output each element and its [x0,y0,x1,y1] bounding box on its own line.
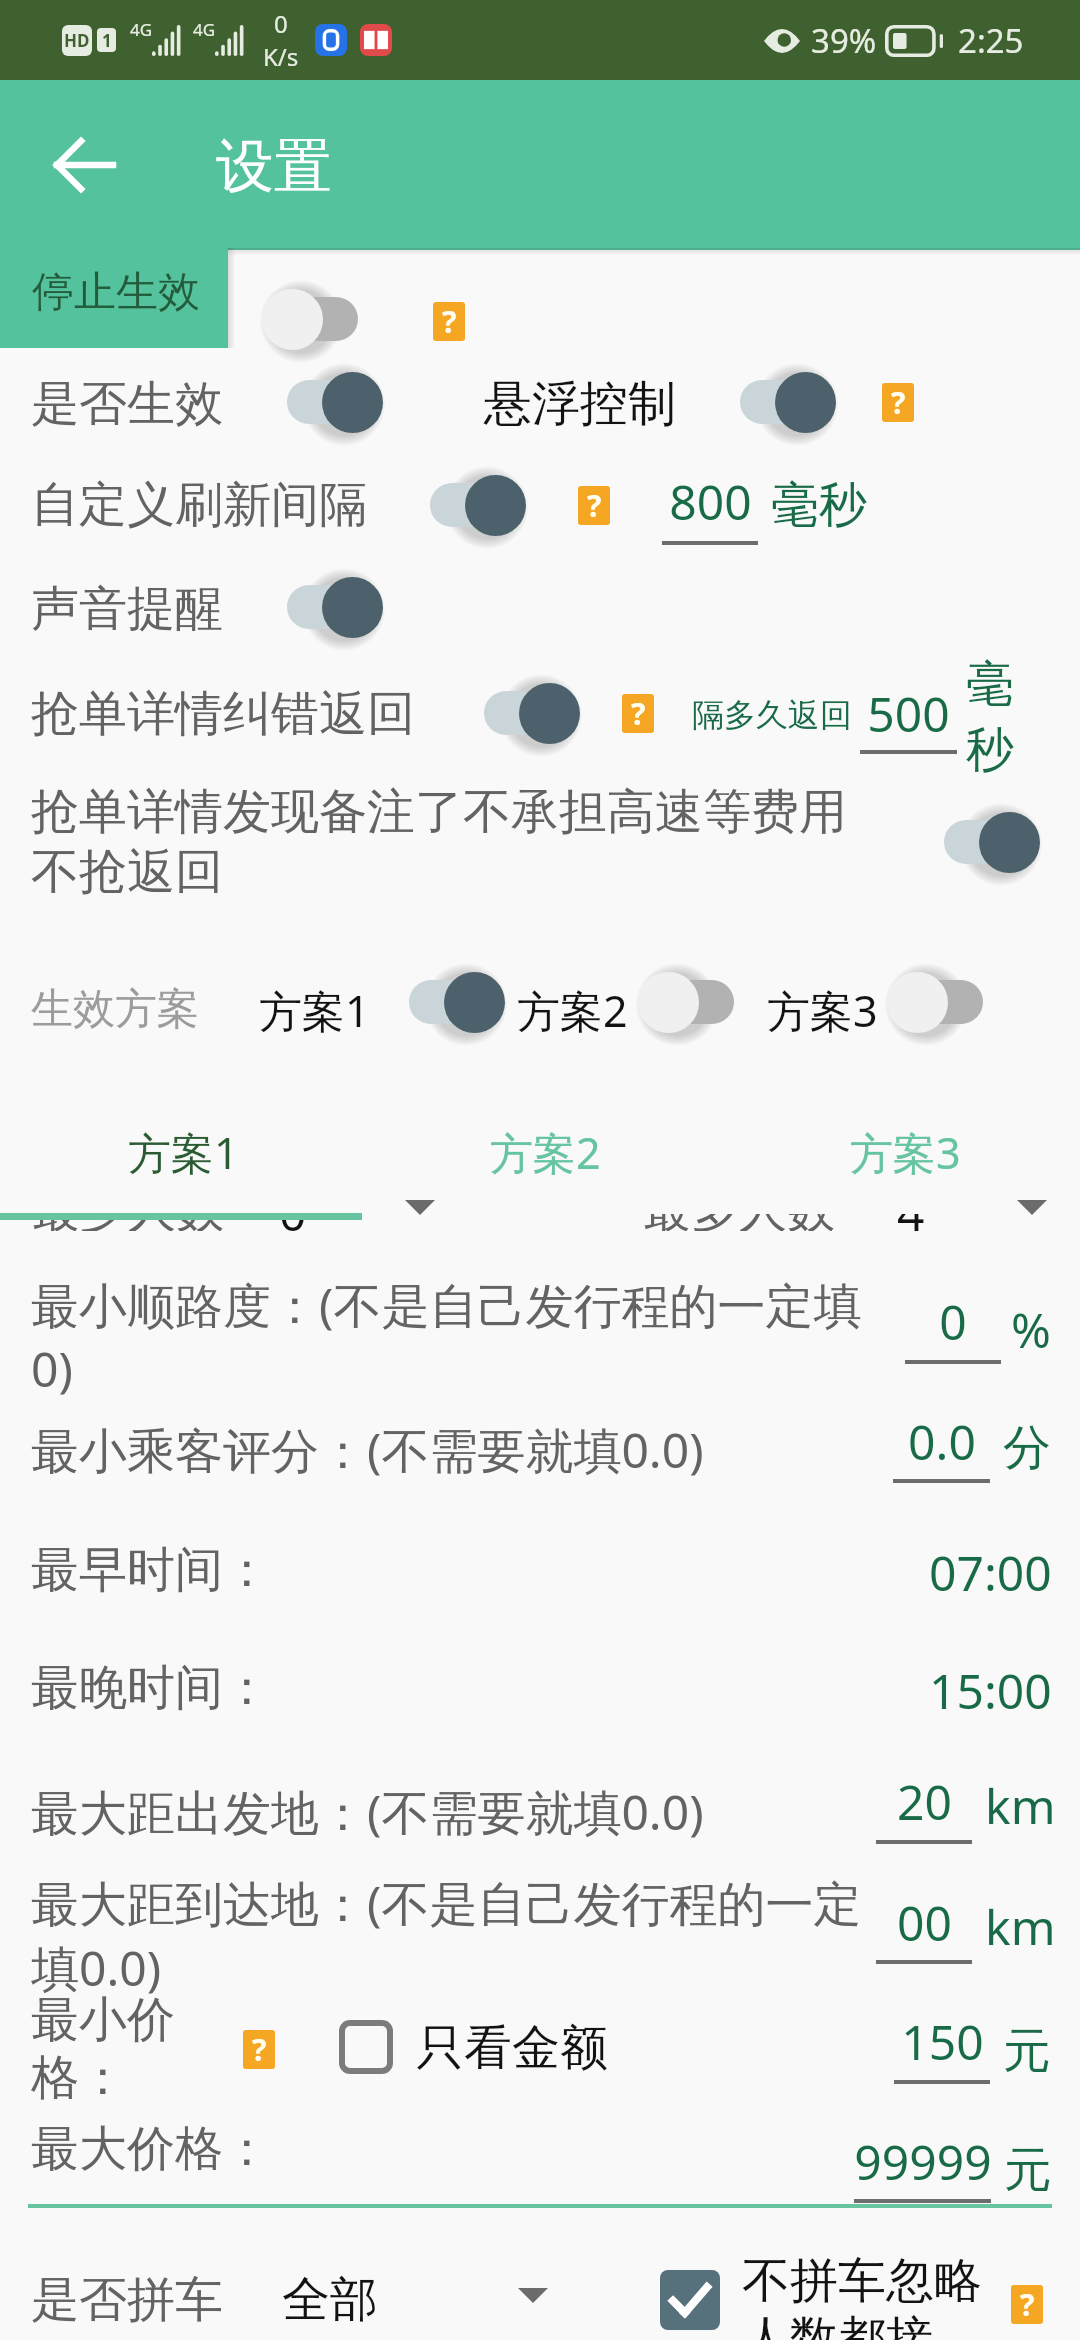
staticText: 99999 [854,2129,991,2194]
staticText: 只看金额 [416,2018,608,2078]
staticText: 毫秒 [771,475,867,535]
button[interactable]: Enabled [430,468,526,542]
staticText: 方案2 [490,1123,601,1182]
staticText: 最早时间： [31,1540,271,1600]
staticText: 抢单详情纠错返回 [31,684,415,744]
button[interactable]: Disabled [262,282,358,356]
staticText: 1 [102,29,112,52]
button[interactable]: Help [433,302,465,341]
button[interactable]: Disabled [638,965,734,1039]
staticText: 分 [1003,1418,1051,1478]
staticText: 是否拼车 [31,2270,223,2330]
staticText: 最小价 格： [31,1990,175,2108]
staticText: ? [252,2030,267,2068]
staticText: 最小顺路度：(不是自己发行程的一定填 0) [31,1272,862,1401]
staticText: 500 [867,681,950,746]
staticText: 全部 [282,2270,378,2330]
button[interactable]: Enabled [287,570,383,644]
staticText: 方案1 [259,981,370,1040]
staticText: HD [64,29,90,52]
button[interactable]: Help [243,2030,275,2069]
staticText: 4G [130,18,153,41]
button[interactable]: Help [578,486,610,525]
staticText: 最多人数 [643,1180,835,1240]
staticText: 元 [1003,2021,1051,2081]
staticText: 生效方案 [31,983,199,1036]
staticText: 隔多久返回 [692,695,852,735]
staticText: 800 [669,469,752,534]
staticText: 0 [939,1289,967,1354]
button[interactable]: Help [882,383,914,422]
staticText: 最大价格： [31,2119,271,2179]
staticText: 毫秒 [966,654,1020,780]
staticText: 不拼车忽略 人数都接 [742,2251,982,2340]
staticText: 39% [811,18,877,63]
staticText: 最晚时间： [31,1658,271,1718]
staticText: 方案3 [767,981,878,1040]
staticText: 最大距出发地：(不需要就填0.0) [31,1779,704,1845]
staticText: 是否生效 [31,374,223,434]
staticText: 自定义刷新间隔 [31,475,367,535]
staticText: ? [891,383,906,421]
staticText: 悬浮控制 [484,374,676,434]
button[interactable]: Enabled [287,365,383,439]
staticText: ? [631,694,646,732]
staticText: 声音提醒 [31,579,223,639]
button[interactable]: Enabled [484,676,580,750]
staticText: 停止生效 [32,266,200,319]
staticText: 0 [274,7,288,40]
staticText: 00 [897,1890,952,1955]
staticText: 方案1 [128,1123,239,1182]
staticText: 最少人数 [32,1180,224,1240]
staticText: 最大距到达地：(不是自己发行程的一定 填0.0) [31,1870,862,2000]
button[interactable]: Enabled [740,365,836,439]
staticText: K/s [263,40,299,73]
button[interactable]: Help [622,694,654,733]
button[interactable]: Checkbox [336,2017,396,2077]
staticText: 方案2 [517,981,628,1040]
staticText: 20 [897,1769,952,1834]
button[interactable]: Checkbox [660,2270,720,2330]
button[interactable]: Disabled [887,965,983,1039]
staticText: km [985,1773,1056,1838]
staticText: 07:00 [929,1540,1052,1605]
button[interactable]: Enabled [944,805,1040,879]
staticText: 150 [901,2009,984,2074]
staticText: ? [442,302,457,340]
staticText: 元 [1004,2140,1052,2200]
staticText: ? [1020,2285,1035,2323]
staticText: 方案3 [850,1123,961,1182]
button[interactable]: Back [40,120,130,210]
staticText: 设置 [216,130,332,203]
button[interactable]: Help [1011,2285,1043,2324]
staticText: 0 [279,1180,307,1245]
staticText: % [1011,1297,1051,1362]
button[interactable]: Enabled [409,965,505,1039]
staticText: 抢单详情发现备注了不承担高速等费用 不抢返回 [31,782,847,902]
staticText: 4 [897,1180,925,1245]
staticText: 2:25 [958,18,1024,63]
staticText: 15:00 [929,1658,1052,1723]
staticText: km [985,1894,1056,1959]
staticText: 4G [193,18,216,41]
staticText: ? [587,486,602,524]
staticText: 最小乘客评分：(不需要就填0.0) [31,1417,704,1483]
staticText: 0.0 [908,1409,976,1474]
